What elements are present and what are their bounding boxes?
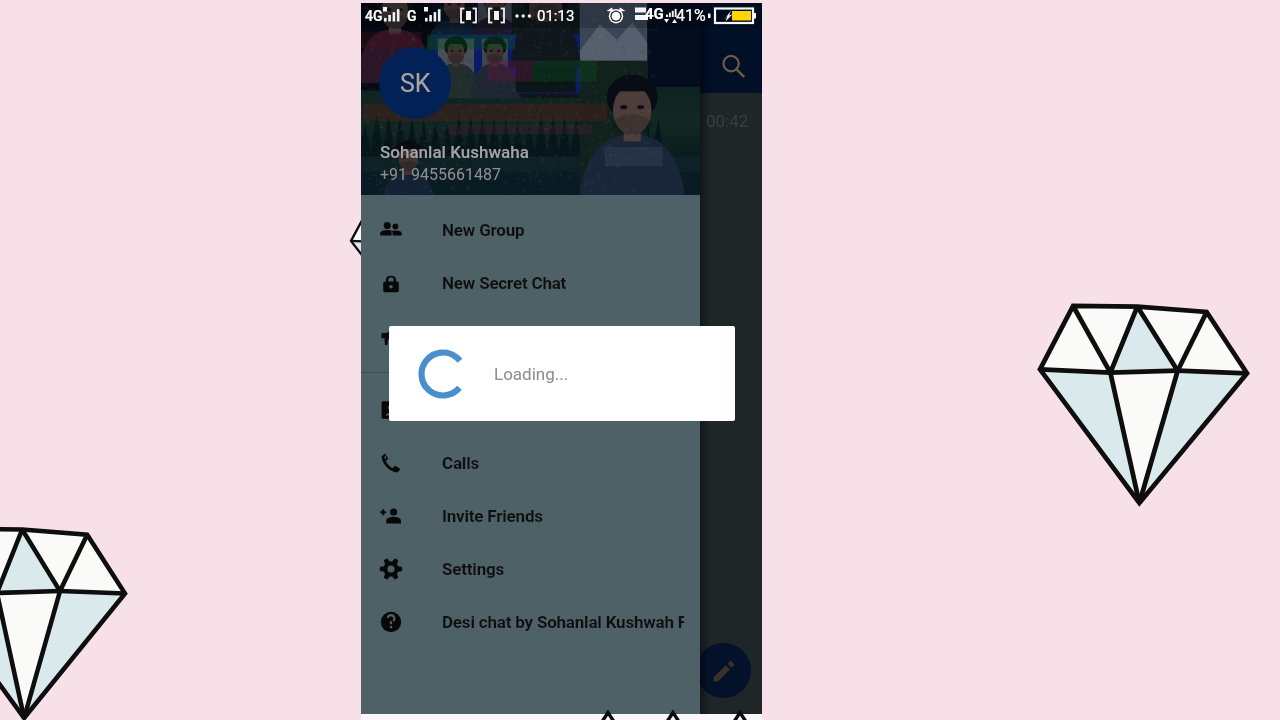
staticText: 41% [676, 6, 706, 25]
button[interactable]: New message [696, 643, 751, 698]
button[interactable]: Calls [361, 436, 700, 489]
staticText: 4G [645, 5, 664, 23]
staticText: 00:42 [706, 111, 749, 131]
staticText: Sohanlal Kushwaha [380, 142, 529, 162]
button[interactable]: New Group [361, 203, 700, 256]
button[interactable]: New Secret Chat [361, 256, 700, 309]
staticText: Invite Friends [442, 506, 543, 526]
staticText: G [407, 8, 417, 24]
staticText: 4G [365, 8, 383, 24]
button[interactable]: Desi chat by Sohanlal Kushwah FAQ [361, 595, 700, 648]
staticText: Calls [442, 453, 480, 473]
staticText: Desi chat by Sohanlal Kushwah FAQ [442, 612, 684, 632]
button[interactable]: New Channel [361, 309, 700, 362]
staticText: Loading... [494, 364, 569, 384]
staticText: New Secret Chat [442, 273, 567, 293]
button[interactable]: Search [712, 45, 754, 87]
button[interactable]: Contacts [361, 383, 700, 436]
staticText: Settings [442, 559, 505, 579]
staticText: 01:13 [537, 7, 575, 25]
staticText: SK [400, 69, 431, 98]
staticText: New Group [442, 220, 525, 240]
button[interactable]: Settings [361, 542, 700, 595]
button[interactable]: Invite Friends [361, 489, 700, 542]
staticText: +91 9455661487 [380, 165, 501, 184]
button[interactable]: SK [379, 47, 451, 119]
